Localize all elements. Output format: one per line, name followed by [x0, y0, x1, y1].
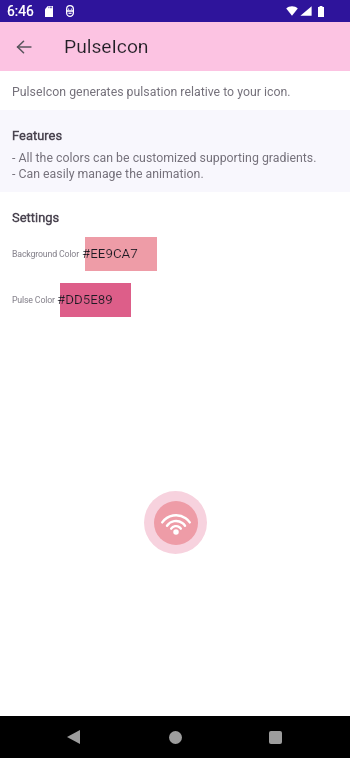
- staticText: #DD5E89: [57, 292, 113, 308]
- staticText: Features: [12, 128, 63, 143]
- button[interactable]: Back: [47, 716, 99, 758]
- button[interactable]: Pulse icon: [154, 501, 198, 545]
- staticText: PulseIcon: [64, 35, 149, 58]
- button[interactable]: Recent apps: [249, 716, 301, 758]
- staticText: Background Color: [12, 249, 80, 259]
- staticText: PulseIcon generates pulsation relative t…: [12, 85, 291, 99]
- staticText: Pulse Color: [12, 295, 55, 305]
- staticText: Settings: [12, 210, 60, 225]
- staticText: #EE9CA7: [82, 246, 138, 262]
- button[interactable]: #DD5E89: [60, 283, 131, 317]
- button[interactable]: Home: [149, 716, 201, 758]
- staticText: - Can easily manage the animation.: [12, 167, 204, 181]
- button[interactable]: Back: [0, 23, 48, 71]
- button[interactable]: #EE9CA7: [85, 237, 157, 271]
- staticText: - All the colors can be customized suppo…: [12, 151, 317, 165]
- staticText: 6:46: [7, 3, 34, 19]
